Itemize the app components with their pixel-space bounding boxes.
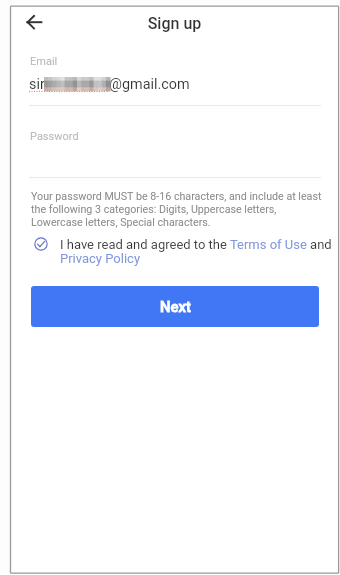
button[interactable]: I have read and agreed to the Terms of U…: [34, 237, 334, 266]
staticText: Email: [30, 55, 58, 68]
staticText: Sign up: [10, 14, 339, 33]
staticText: Password: [30, 130, 79, 143]
staticText: Next: [160, 298, 191, 315]
staticText: Your password MUST be 8-16 characters, a…: [31, 190, 324, 229]
button[interactable]: Back: [20, 8, 48, 36]
staticText: I have read and agreed to the Terms of U…: [60, 237, 334, 266]
staticText: sirxxxxxxxxx@gmail.com: [29, 76, 190, 93]
button[interactable]: Next: [31, 286, 319, 327]
